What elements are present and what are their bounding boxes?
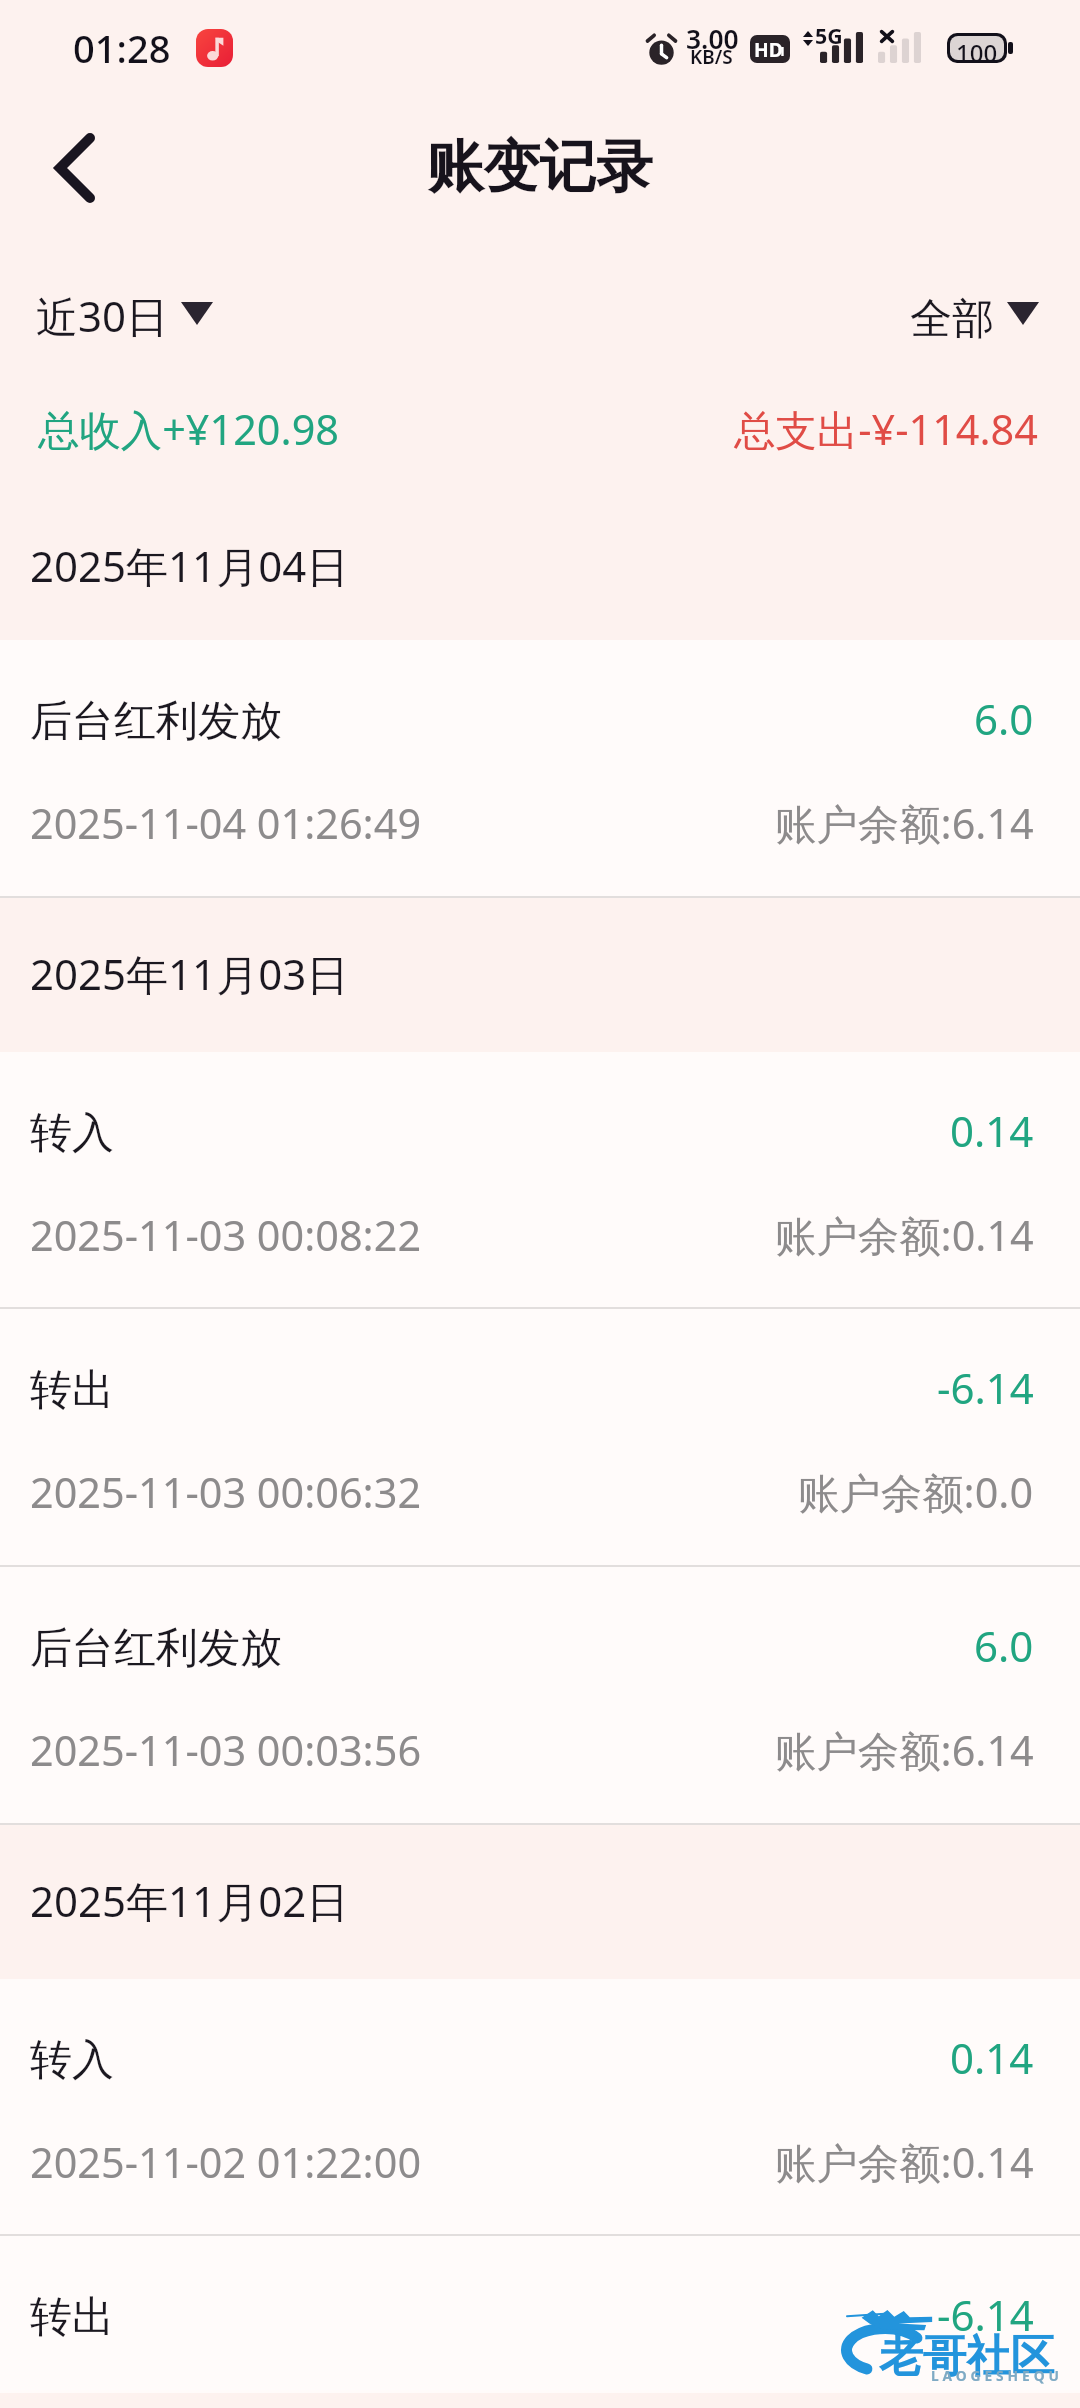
staticText: 账户余额:6.14	[775, 795, 1034, 852]
staticText: 6.0	[974, 690, 1034, 747]
staticText: 100	[956, 36, 998, 60]
staticText: 后台红利发放	[30, 695, 282, 748]
staticText: 账变记录	[427, 132, 653, 203]
staticText: 2025年11月04日	[30, 537, 349, 594]
staticText: 老哥社区	[879, 2329, 1055, 2384]
staticText: 账户余额:0.0	[798, 2391, 1034, 2408]
staticText: 2025-11-02 01:20:10	[30, 2391, 422, 2408]
staticText: 转出	[30, 1364, 114, 1417]
staticText: 账户余额:0.14	[775, 2134, 1034, 2191]
button[interactable]: 后台红利发放	[0, 640, 1080, 898]
staticText: HD	[754, 36, 783, 62]
button[interactable]: 转出	[0, 2236, 1080, 2408]
staticText: 2025-11-04 01:26:49	[30, 795, 422, 851]
button[interactable]: 转入	[0, 1052, 1080, 1309]
button[interactable]: 转出	[0, 1309, 1080, 1567]
staticText: 2025-11-03 00:06:32	[30, 1464, 422, 1520]
button[interactable]: 近30日	[14, 257, 230, 347]
staticText: 账户余额:6.14	[775, 1722, 1034, 1779]
staticText: -6.14	[937, 2286, 1034, 2343]
staticText: 转入	[30, 1107, 114, 1160]
staticText: 2025年11月03日	[30, 945, 349, 1002]
staticText: 账户余额:0.0	[798, 1464, 1034, 1521]
staticText: 总支出-¥-114.84	[734, 401, 1038, 458]
staticText: 后台红利发放	[30, 1622, 282, 1675]
staticText: 2025-11-03 00:03:56	[30, 1722, 422, 1778]
staticText: 5G	[815, 21, 843, 50]
staticText: 近30日	[36, 287, 169, 344]
staticText: 全部	[910, 293, 994, 346]
staticText: 0.14	[950, 2029, 1034, 2086]
staticText: 01:28	[73, 22, 171, 74]
staticText: 2025年11月02日	[30, 1872, 349, 1929]
staticText: KB/S	[690, 44, 733, 70]
staticText: 6.0	[974, 1617, 1034, 1674]
staticText: 转入	[30, 2034, 114, 2087]
staticText: 总收入+¥120.98	[38, 401, 339, 458]
button[interactable]: Back	[20, 98, 130, 237]
staticText: 2025-11-02 01:22:00	[30, 2134, 422, 2190]
staticText: 0.14	[950, 1102, 1034, 1159]
staticText: LAOGESHEQU	[931, 2366, 1063, 2385]
staticText: 2025-11-03 00:08:22	[30, 1207, 422, 1263]
staticText: 转出	[30, 2291, 114, 2344]
staticText: -6.14	[937, 1359, 1034, 1416]
staticText: 账户余额:0.14	[775, 1207, 1034, 1264]
staticText: 3.00	[686, 21, 739, 57]
button[interactable]: 后台红利发放	[0, 1567, 1080, 1825]
staticText: 1	[778, 42, 786, 60]
button[interactable]: 全部	[888, 257, 1058, 347]
button[interactable]: 转入	[0, 1979, 1080, 2236]
